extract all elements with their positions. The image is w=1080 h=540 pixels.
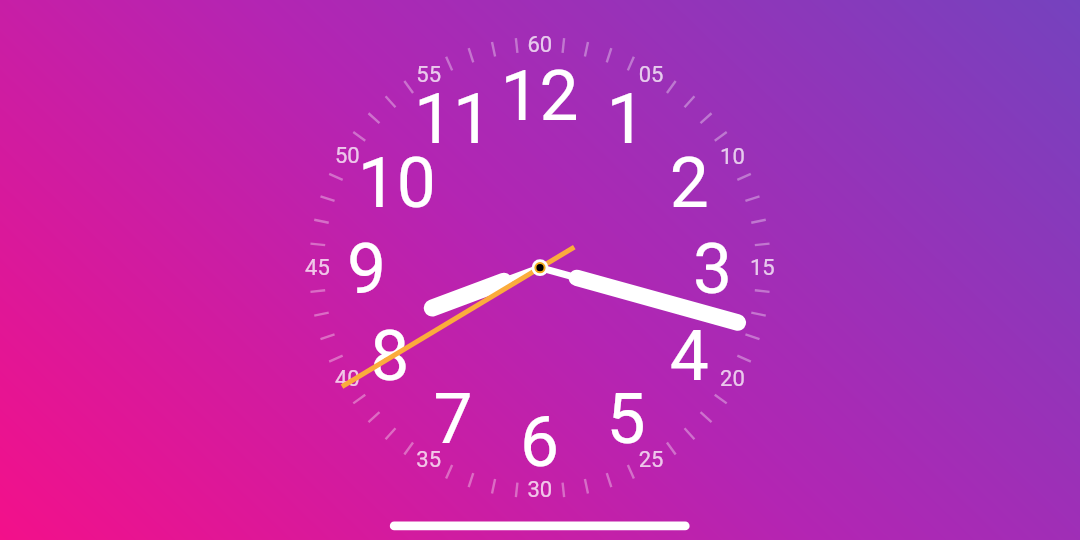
button[interactable]: Analog clock showing 8:18 — [0, 0, 1080, 540]
